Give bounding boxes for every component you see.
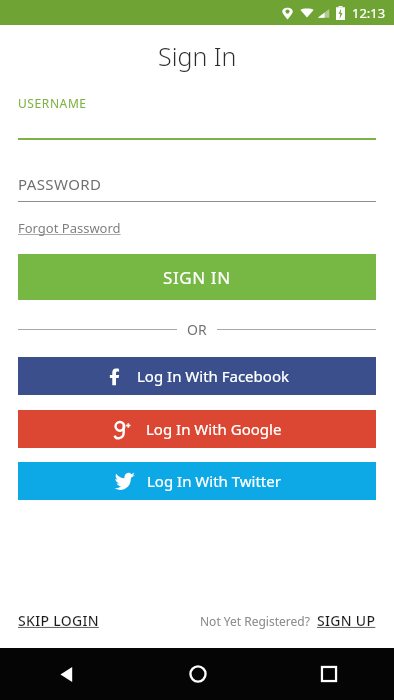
- button[interactable]: Back: [0, 648, 132, 700]
- button[interactable]: SIGN IN: [18, 254, 376, 300]
- staticText: OR: [187, 320, 207, 339]
- button[interactable]: Recent apps: [263, 648, 394, 700]
- staticText: PASSWORD: [18, 174, 102, 194]
- staticText: USERNAME: [18, 95, 87, 111]
- button[interactable]: SIGN UP: [317, 611, 376, 630]
- button[interactable]: Log In With Twitter: [18, 462, 376, 500]
- staticText: Log In With Google: [146, 419, 282, 439]
- button[interactable]: Log In With Google: [18, 410, 376, 448]
- staticText: Log In With Twitter: [147, 471, 281, 491]
- staticText: SIGN IN: [163, 266, 231, 289]
- button[interactable]: Home: [132, 648, 263, 700]
- staticText: 12:13: [352, 4, 386, 22]
- staticText: Forgot Password: [18, 219, 121, 237]
- button[interactable]: Forgot Password: [18, 219, 121, 237]
- staticText: SIGN UP: [317, 611, 376, 630]
- button[interactable]: Log In With Facebook: [18, 357, 376, 395]
- staticText: Not Yet Registered?: [200, 613, 310, 629]
- staticText: Log In With Facebook: [137, 366, 289, 386]
- button[interactable]: SKIP LOGIN: [18, 611, 99, 630]
- staticText: SKIP LOGIN: [18, 611, 99, 630]
- staticText: Sign In: [158, 39, 237, 73]
